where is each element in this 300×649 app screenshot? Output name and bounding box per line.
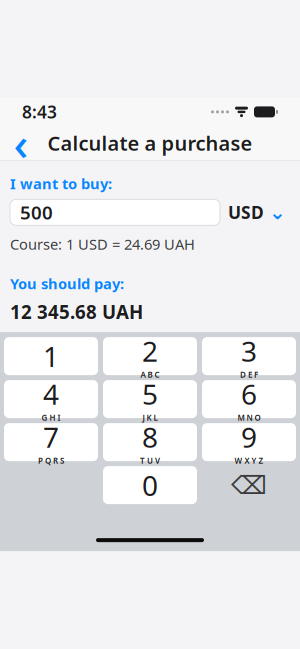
staticText: P Q R S [38, 455, 64, 466]
button[interactable]: 2 [103, 337, 197, 375]
staticText: 5 [142, 375, 158, 412]
staticText: 3 [241, 332, 257, 369]
staticText: 7 [43, 418, 59, 455]
button[interactable]: 6 [202, 380, 296, 418]
staticText: M N O [237, 412, 260, 423]
staticText: A B C [140, 369, 159, 380]
button[interactable]: 7 [4, 423, 98, 461]
staticText: ⌫ [231, 471, 267, 499]
button[interactable]: 8 [103, 423, 197, 461]
button[interactable]: 3 [202, 337, 296, 375]
staticText: 9 [241, 418, 257, 455]
button[interactable]: Delete [202, 466, 296, 504]
button[interactable]: 9 [202, 423, 296, 461]
staticText: ‹ [13, 113, 28, 173]
staticText: 4 [43, 375, 59, 412]
button[interactable]: 5 [103, 380, 197, 418]
staticText: 0 [142, 466, 158, 504]
staticText: G H I [41, 412, 60, 423]
staticText: 6 [241, 375, 257, 412]
staticText: USD [228, 201, 264, 224]
button[interactable]: USD [220, 199, 294, 225]
button[interactable]: 1 [4, 337, 98, 375]
staticText: 500 [20, 200, 53, 225]
staticText: W X Y Z [234, 455, 263, 466]
button[interactable]: 4 [4, 380, 98, 418]
staticText: D E F [240, 369, 258, 380]
staticText: 1 [43, 337, 59, 375]
staticText: 2 [142, 332, 158, 369]
staticText: Course: 1 USD = 24.69 UAH [10, 234, 195, 254]
staticText: I want to buy: [10, 174, 112, 193]
staticText: Calculate a purchase [47, 130, 252, 156]
staticText: 8:43 [22, 100, 57, 123]
staticText: You should pay: [10, 274, 124, 293]
staticText: T U V [140, 455, 160, 466]
button[interactable]: 0 [103, 466, 197, 504]
button[interactable]: Back [4, 126, 38, 160]
staticText: 8 [142, 418, 158, 455]
staticText: ⌄ [269, 201, 286, 224]
staticText: J K L [142, 412, 157, 423]
staticText: 12 345.68 UAH [10, 299, 143, 324]
